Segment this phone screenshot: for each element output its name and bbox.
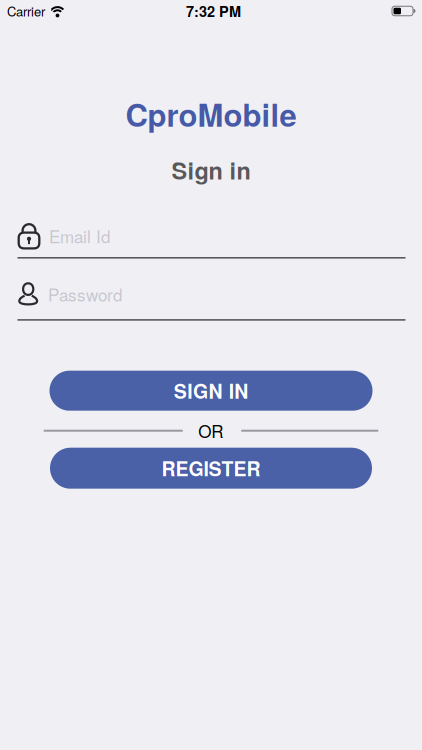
staticText: SIGN IN (174, 377, 248, 405)
staticText: 7:32 PM (186, 1, 241, 21)
button[interactable]: SIGN IN (49, 371, 372, 411)
staticText: Carrier (7, 2, 45, 20)
button[interactable]: Email Id (0, 223, 422, 259)
button[interactable]: Password (0, 282, 422, 321)
staticText: Email Id (49, 224, 110, 248)
staticText: OR (198, 418, 223, 443)
staticText: CproMobile (125, 92, 296, 136)
staticText: Sign in (171, 153, 250, 187)
staticText: Password (48, 282, 122, 306)
staticText: REGISTER (161, 454, 260, 482)
button[interactable]: REGISTER (50, 448, 372, 489)
